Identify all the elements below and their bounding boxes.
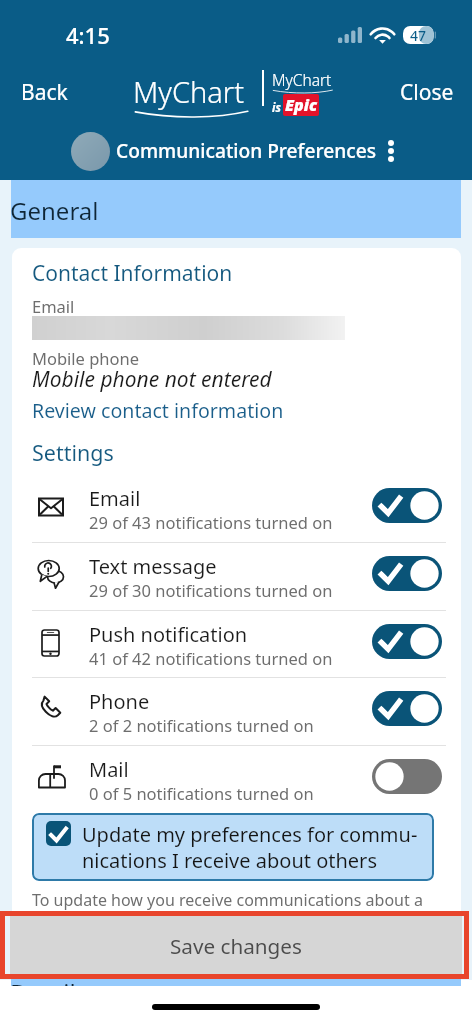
staticText: 0 of 5 notifications turned on bbox=[89, 782, 314, 804]
staticText: Review contact information bbox=[32, 397, 284, 424]
button[interactable]: Turn on bbox=[372, 759, 442, 794]
staticText: Close bbox=[400, 78, 454, 107]
staticText: 2 of 2 notifications turned on bbox=[89, 714, 314, 736]
button[interactable]: More options bbox=[378, 133, 404, 169]
button[interactable]: Phone bbox=[13, 677, 460, 744]
staticText: Mobile phone not entered bbox=[32, 365, 272, 394]
staticText: MyChart bbox=[272, 69, 332, 90]
button[interactable]: Turn off bbox=[372, 556, 442, 591]
staticText: To update how you receive communications… bbox=[32, 889, 423, 911]
staticText: Update my preferences for commu- nicatio… bbox=[82, 821, 418, 874]
button[interactable]: Turn off bbox=[372, 488, 442, 523]
button[interactable]: Mail bbox=[13, 745, 460, 812]
staticText: 4:15 bbox=[66, 20, 110, 50]
button[interactable]: Email bbox=[13, 474, 460, 541]
button[interactable]: Review contact information bbox=[32, 397, 284, 424]
staticText: MyChart bbox=[133, 72, 245, 111]
staticText: Push notification bbox=[89, 621, 248, 648]
staticText: Communication Preferences bbox=[116, 137, 377, 163]
staticText: Email bbox=[89, 485, 141, 512]
staticText: Text message bbox=[89, 553, 217, 580]
button[interactable]: Close bbox=[388, 72, 466, 113]
staticText: Settings bbox=[32, 438, 114, 467]
staticText: 29 of 30 notifications turned on bbox=[89, 579, 333, 601]
button[interactable]: Turn off bbox=[372, 691, 442, 726]
staticText: General bbox=[10, 194, 99, 227]
button[interactable]: General bbox=[11, 180, 461, 238]
staticText: Contact Information bbox=[32, 259, 233, 288]
button[interactable]: Text message bbox=[13, 542, 460, 609]
button[interactable]: Save changes bbox=[10, 916, 462, 975]
staticText: Details bbox=[11, 976, 88, 986]
staticText: Save changes bbox=[170, 932, 302, 960]
button[interactable]: Update my preferences for commu- nicatio… bbox=[32, 813, 434, 881]
button[interactable]: Back bbox=[8, 72, 81, 113]
staticText: Back bbox=[21, 78, 68, 107]
staticText: Phone bbox=[89, 688, 150, 715]
staticText: is bbox=[272, 100, 281, 116]
staticText: 41 of 42 notifications turned on bbox=[89, 647, 333, 669]
staticText: 47 bbox=[410, 26, 427, 44]
staticText: Epic bbox=[285, 94, 317, 116]
staticText: 29 of 43 notifications turned on bbox=[89, 511, 333, 533]
staticText: Mobile phone bbox=[32, 347, 140, 369]
button[interactable]: Turn off bbox=[372, 624, 442, 659]
staticText: Email bbox=[32, 295, 75, 317]
button[interactable]: Push notification bbox=[13, 610, 460, 677]
staticText: Mail bbox=[89, 756, 129, 783]
